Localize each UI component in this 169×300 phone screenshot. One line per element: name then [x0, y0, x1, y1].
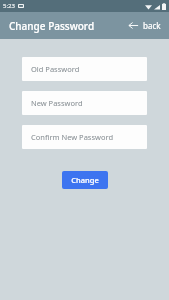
- staticText: Old Password: [31, 64, 80, 74]
- staticText: 5:23: [3, 2, 15, 10]
- button[interactable]: New Password: [22, 91, 147, 115]
- staticText: New Password: [31, 98, 83, 108]
- other: Back: [128, 20, 139, 31]
- staticText: Change Password: [9, 19, 95, 33]
- staticText: Change: [71, 175, 99, 185]
- button[interactable]: Confirm New Password: [22, 125, 147, 149]
- button[interactable]: Old Password: [22, 57, 147, 81]
- button[interactable]: Back: [128, 20, 161, 31]
- staticText: Confirm New Password: [31, 132, 114, 142]
- button[interactable]: Change: [62, 171, 108, 189]
- staticText: back: [143, 20, 161, 31]
